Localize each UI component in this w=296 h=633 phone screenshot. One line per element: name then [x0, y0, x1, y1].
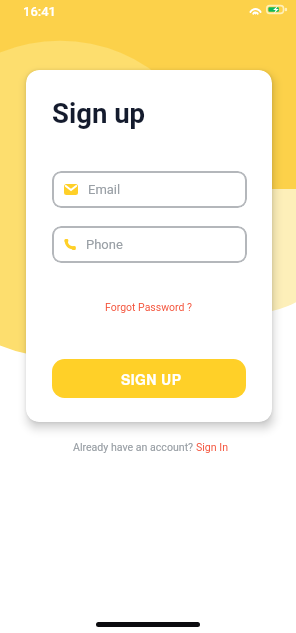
button[interactable]: Email: [52, 171, 247, 208]
other: Wi-Fi: [249, 4, 262, 15]
button[interactable]: Sign In: [196, 441, 229, 453]
staticText: Email: [88, 182, 121, 197]
staticText: 16:41: [23, 4, 57, 19]
staticText: Forgot Password ?: [105, 301, 193, 313]
button[interactable]: SIGN UP: [52, 359, 246, 398]
other: Battery charging: [266, 5, 286, 14]
staticText: Sign up: [52, 97, 146, 129]
staticText: SIGN UP: [121, 369, 182, 389]
button[interactable]: Phone: [52, 226, 247, 263]
button[interactable]: Forgot Password ?: [26, 296, 272, 318]
staticText: Phone: [86, 237, 123, 252]
staticText: Already have an account?: [73, 441, 196, 453]
